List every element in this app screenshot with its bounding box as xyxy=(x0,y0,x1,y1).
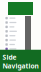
button[interactable]: Menu item xyxy=(4,42,25,47)
staticText: Side Navigation xyxy=(2,53,38,70)
button[interactable]: Menu item xyxy=(4,25,25,29)
button[interactable]: Menu item xyxy=(4,34,25,38)
button[interactable]: Menu item xyxy=(4,29,25,33)
button[interactable]: Menu item xyxy=(4,16,25,20)
button[interactable]: Menu item xyxy=(4,51,25,55)
button[interactable]: Menu item xyxy=(4,20,25,25)
button[interactable]: Menu item xyxy=(4,47,25,51)
button[interactable]: Menu item xyxy=(4,38,25,42)
